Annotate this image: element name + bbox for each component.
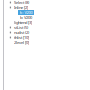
button[interactable]: nudist (2)	[0, 30, 90, 35]
button[interactable]: lightend [3]	[0, 20, 90, 25]
staticText: Select (8)	[14, 0, 29, 5]
button[interactable]: Select (8)	[0, 0, 90, 5]
staticText: nudist (2)	[14, 30, 29, 35]
button[interactable]: stList (5)	[0, 25, 90, 30]
staticText: 2level [0]	[14, 40, 29, 45]
button[interactable]: Inline [2]	[0, 5, 90, 10]
button[interactable]: 2level [0]	[0, 40, 90, 45]
button[interactable]: thlist [10]	[0, 35, 90, 40]
button[interactable]: fc: V200	[0, 10, 90, 15]
staticText: stList (5)	[14, 25, 28, 30]
staticText: lightend [3]	[14, 20, 32, 25]
staticText: fc: V200	[19, 10, 32, 15]
staticText: thlist [10]	[14, 35, 29, 40]
staticText: Inline [2]	[14, 5, 28, 10]
button[interactable]: b: V200	[0, 15, 90, 20]
staticText: b: V200	[20, 15, 32, 20]
